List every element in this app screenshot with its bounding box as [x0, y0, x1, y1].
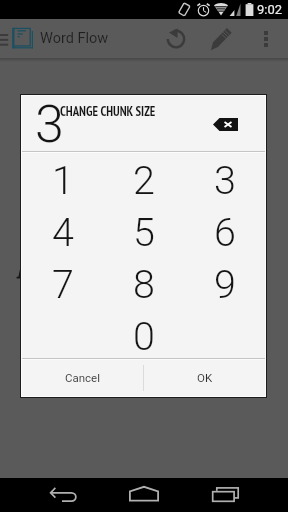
button[interactable]: Delete [206, 107, 244, 141]
staticText: 3 [35, 94, 64, 155]
button[interactable]: More options [248, 19, 284, 58]
staticText: 3 [214, 157, 236, 203]
button[interactable]: 7 [22, 258, 103, 310]
staticText: OK [197, 371, 213, 384]
button[interactable]: Cancel [22, 359, 144, 396]
staticText: 4 [52, 209, 74, 255]
button[interactable]: 2 [103, 154, 184, 206]
button[interactable]: 0 [103, 310, 184, 362]
button[interactable] [22, 310, 103, 362]
staticText: 0 [133, 313, 155, 359]
staticText: CHANGE CHUNK SIZE [60, 103, 156, 120]
button[interactable]: 3 [184, 154, 265, 206]
button[interactable]: Refresh [158, 19, 194, 58]
staticText: 2 [133, 157, 155, 203]
staticText: Cancel [65, 371, 101, 384]
button[interactable] [184, 310, 265, 362]
button[interactable]: 6 [184, 206, 265, 258]
staticText: 1 [52, 157, 74, 203]
button[interactable]: Home [120, 478, 168, 512]
button[interactable]: Edit [203, 19, 239, 58]
button[interactable]: Back [40, 478, 88, 512]
button[interactable]: Navigation drawer [0, 19, 11, 58]
button[interactable]: Recent apps [200, 478, 248, 512]
staticText: 9 [214, 261, 236, 307]
staticText: 9:02 [257, 2, 283, 17]
staticText: 6 [214, 209, 236, 255]
staticText: 8 [133, 261, 155, 307]
button[interactable]: 5 [103, 206, 184, 258]
staticText: 7 [52, 261, 74, 307]
button[interactable]: 9 [184, 258, 265, 310]
button[interactable]: 1 [22, 154, 103, 206]
button[interactable]: 8 [103, 258, 184, 310]
staticText: 5 [133, 209, 155, 255]
staticText: Word Flow [40, 30, 109, 47]
button[interactable]: 4 [22, 206, 103, 258]
button[interactable]: OK [144, 359, 265, 396]
